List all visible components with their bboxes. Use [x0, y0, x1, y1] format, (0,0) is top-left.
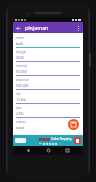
staticText: tanggal	[16, 50, 27, 54]
button[interactable]: Recent apps	[63, 146, 72, 155]
button[interactable]: Advertisement	[13, 135, 83, 146]
staticText: nominal	[16, 64, 27, 68]
button[interactable]: jasa	[16, 106, 80, 118]
button[interactable]: Home	[44, 146, 53, 155]
button[interactable]: nama	[16, 36, 80, 48]
button[interactable]: nominal	[16, 64, 80, 76]
button[interactable]: catatan	[16, 120, 80, 130]
staticText: budi	[16, 41, 24, 46]
button[interactable]: tanggal	[16, 50, 80, 62]
staticText: angsuran	[16, 78, 29, 82]
staticText: Online Shopping	[51, 137, 72, 141]
staticText: 2020	[16, 55, 24, 60]
staticText: tunai	[16, 125, 25, 130]
staticText: catatan	[16, 120, 26, 124]
staticText: 500.000	[16, 83, 29, 88]
button[interactable]: Back	[24, 146, 33, 155]
staticText: ad	[39, 142, 42, 145]
staticText: 12 bln	[16, 97, 26, 102]
staticText: pinjaman	[25, 24, 49, 31]
button[interactable]: Back	[13, 23, 23, 33]
staticText: 50.000	[16, 69, 27, 74]
button[interactable]: Save	[68, 119, 79, 130]
staticText: nama	[16, 36, 24, 40]
button[interactable]: More options	[73, 23, 83, 33]
button[interactable]: angsuran	[16, 78, 80, 90]
staticText: jasa	[16, 106, 22, 110]
staticText: 2.5%	[16, 111, 24, 116]
staticText: tipe	[16, 92, 22, 96]
button[interactable]: tipe	[16, 92, 80, 104]
